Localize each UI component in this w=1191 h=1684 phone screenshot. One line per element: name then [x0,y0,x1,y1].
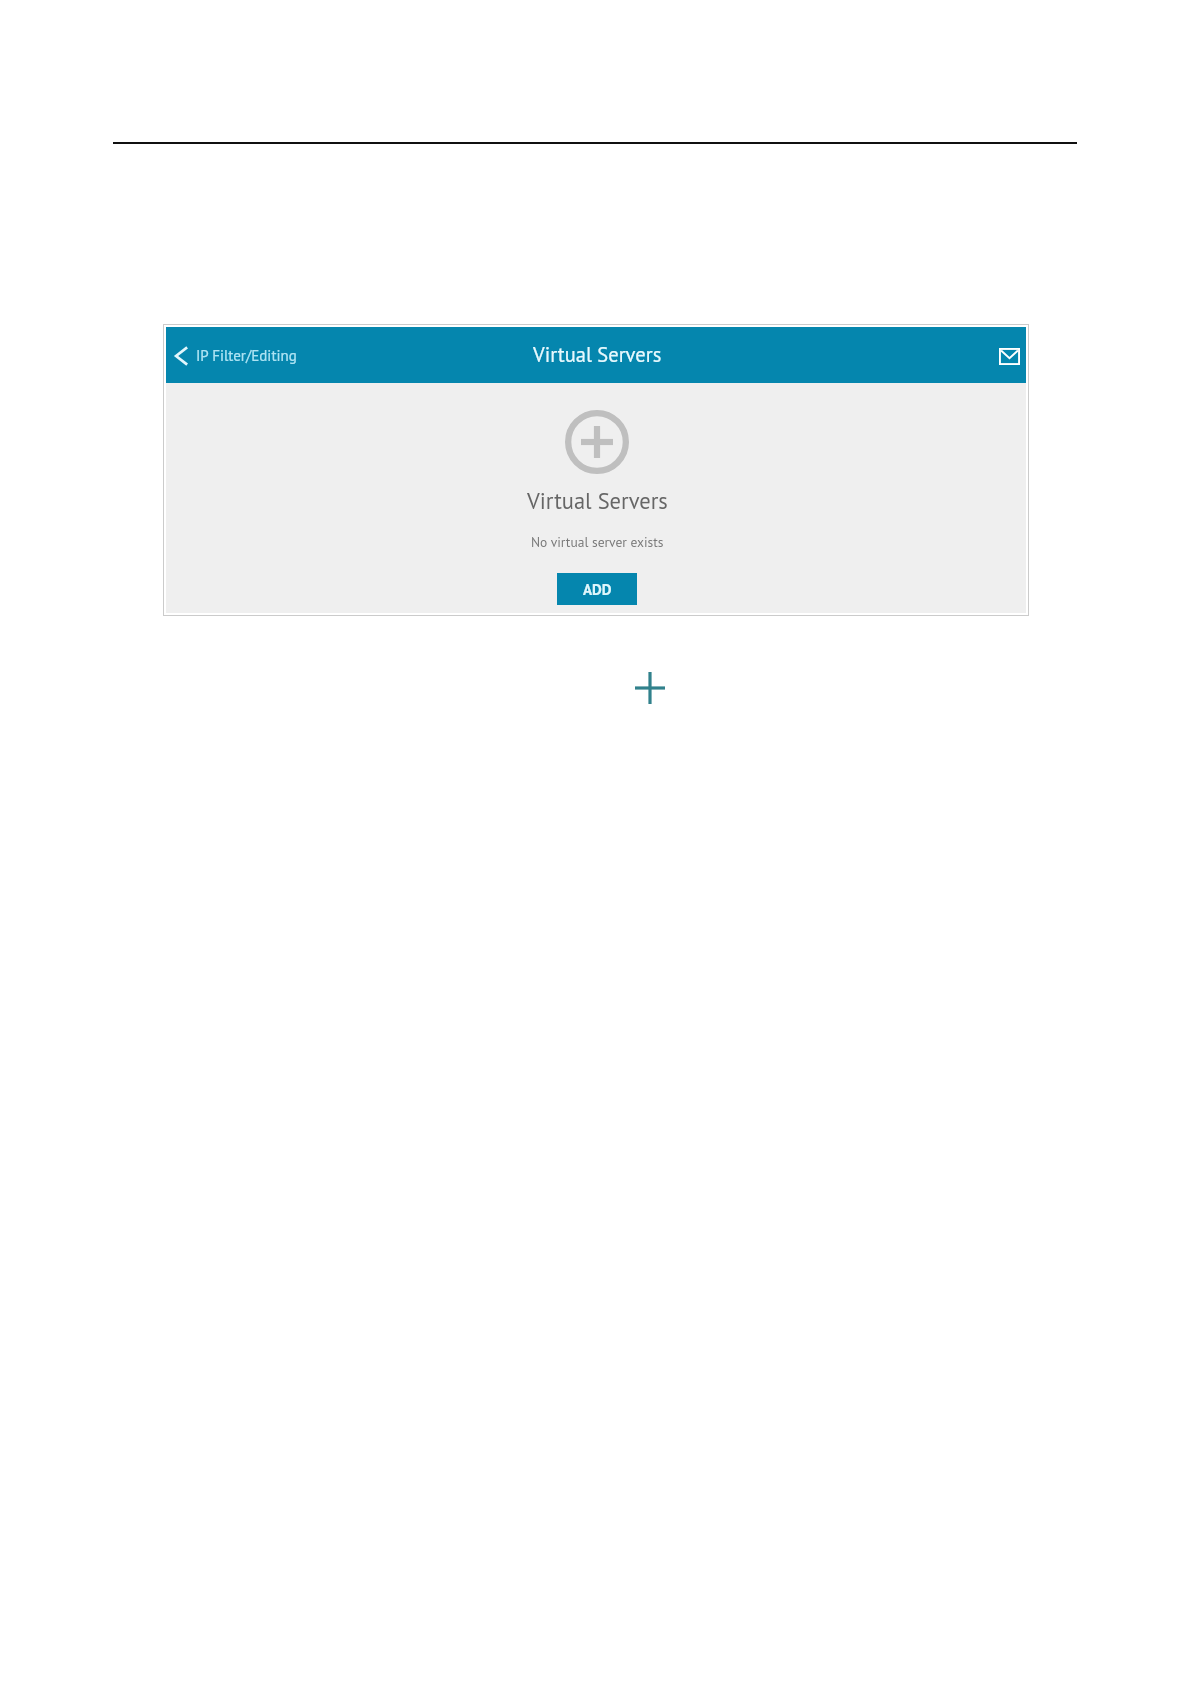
staticText: No virtual server exists [531,533,664,550]
staticText: Virtual Servers [533,341,662,368]
button[interactable]: Add [634,671,666,705]
button[interactable]: ADD [557,573,637,605]
button[interactable]: Messages [989,336,1029,376]
staticText: Virtual Servers [527,486,668,515]
button[interactable]: IP Filter/Editing [166,337,307,373]
staticText: ADD [583,580,612,599]
staticText: IP Filter/Editing [196,346,297,365]
button[interactable]: Add virtual server [565,410,629,474]
